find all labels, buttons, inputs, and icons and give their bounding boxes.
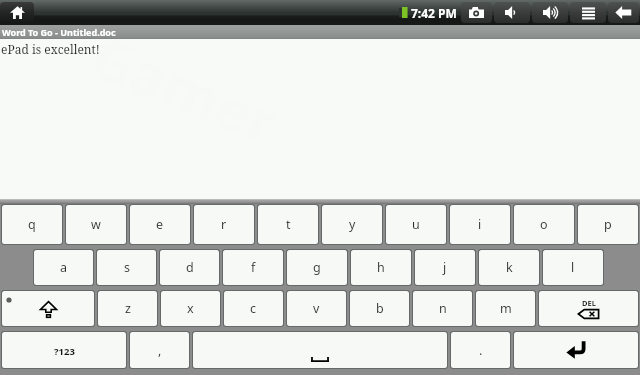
staticText: f (251, 259, 256, 276)
button[interactable]: i (450, 205, 510, 244)
button[interactable]: t (258, 205, 318, 244)
button[interactable] (193, 332, 447, 368)
staticText: h (377, 259, 385, 276)
button[interactable]: Volume down (494, 2, 530, 23)
staticText: Word To Go - Untitled.doc (2, 26, 116, 38)
staticText: c (250, 300, 257, 317)
staticText: m (500, 300, 512, 317)
button[interactable]: a (34, 250, 93, 285)
button[interactable]: Menu (570, 2, 606, 23)
button[interactable]: n (413, 291, 472, 326)
staticText: y (349, 216, 356, 233)
button[interactable]: . (451, 332, 510, 368)
button[interactable]: r (194, 205, 254, 244)
staticText: , (158, 342, 162, 359)
staticText: v (313, 300, 320, 317)
button[interactable]: ?123 (2, 332, 126, 368)
button[interactable]: Back (608, 2, 639, 23)
staticText: u (412, 216, 420, 233)
staticText: d (186, 259, 194, 276)
button[interactable]: Shift (2, 291, 94, 326)
staticText: b (376, 300, 384, 317)
button[interactable]: , (130, 332, 189, 368)
button[interactable]: DEL (539, 291, 638, 326)
button[interactable]: w (66, 205, 126, 244)
staticText: n (439, 300, 447, 317)
staticText: DEL (582, 298, 596, 308)
staticText: x (187, 300, 194, 317)
staticText: ePad is excellent! (1, 41, 100, 57)
staticText: q (28, 216, 36, 233)
button[interactable]: g (287, 250, 347, 285)
button[interactable]: z (98, 291, 157, 326)
staticText: w (91, 216, 101, 233)
button[interactable]: k (479, 250, 539, 285)
staticText: p (604, 216, 612, 233)
button[interactable]: j (415, 250, 475, 285)
button[interactable]: s (97, 250, 156, 285)
button[interactable]: b (350, 291, 409, 326)
staticText: g (313, 259, 321, 276)
button[interactable]: Camera (461, 2, 492, 23)
button[interactable]: d (160, 250, 219, 285)
staticText: r (221, 216, 227, 233)
button[interactable]: q (2, 205, 62, 244)
button[interactable] (514, 332, 638, 368)
button[interactable]: Volume up (532, 2, 568, 23)
button[interactable]: Home (0, 2, 34, 22)
button[interactable]: h (351, 250, 411, 285)
staticText: t (286, 216, 291, 233)
button[interactable]: x (161, 291, 220, 326)
staticText: e (156, 216, 164, 233)
staticText: i (478, 216, 482, 233)
staticText: ?123 (54, 345, 75, 358)
button[interactable]: l (543, 250, 603, 285)
button[interactable]: m (476, 291, 535, 326)
button[interactable]: u (386, 205, 446, 244)
staticText: . (479, 342, 483, 359)
button[interactable]: c (224, 291, 283, 326)
staticText: z (125, 300, 131, 317)
button[interactable]: v (287, 291, 346, 326)
staticText: o (540, 216, 548, 233)
staticText: Gamer (80, 15, 290, 161)
button[interactable]: o (514, 205, 574, 244)
staticText: j (443, 259, 447, 276)
button[interactable]: f (223, 250, 283, 285)
button[interactable]: p (578, 205, 638, 244)
staticText: k (506, 259, 513, 276)
staticText: 7:42 PM (411, 5, 457, 21)
button[interactable]: y (322, 205, 382, 244)
staticText: s (124, 259, 130, 276)
button[interactable]: e (130, 205, 190, 244)
staticText: l (571, 259, 575, 276)
staticText: a (60, 259, 68, 276)
